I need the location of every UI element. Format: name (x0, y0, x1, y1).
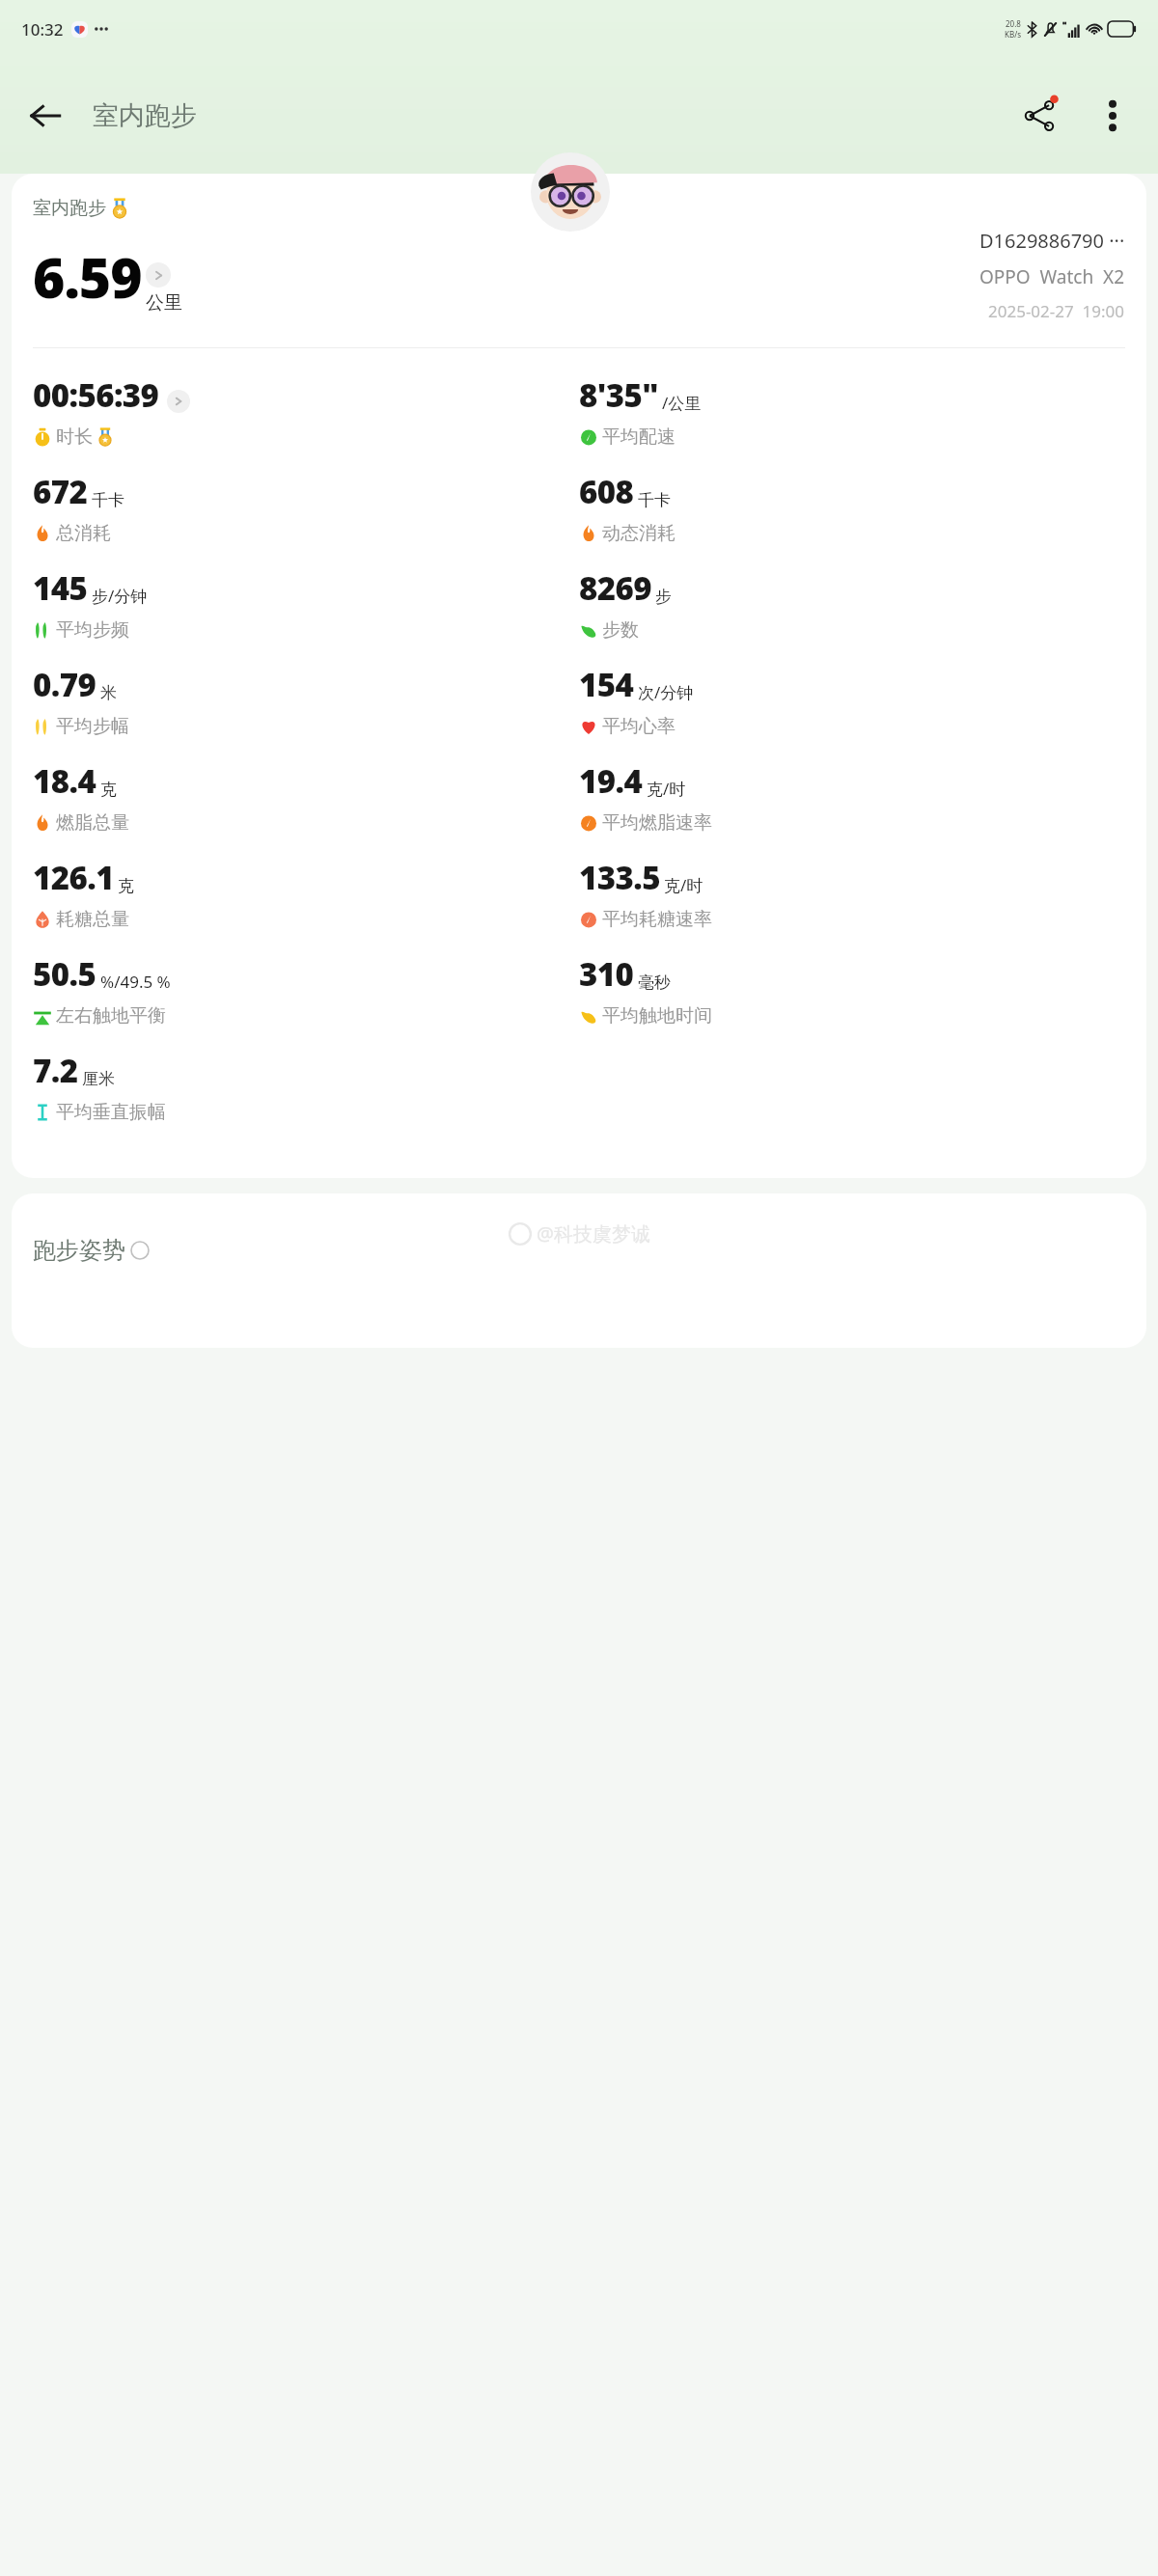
staticText: 2025-02-27 19:00 (988, 300, 1125, 322)
staticText: 145 (33, 566, 88, 610)
staticText: 公里 (146, 291, 182, 315)
button[interactable]: Distance detail (146, 262, 171, 288)
staticText: 平均步频 (56, 618, 129, 642)
staticText: 毫秒 (638, 973, 671, 993)
staticText: /公里 (662, 392, 702, 414)
staticText: 8'35" (579, 373, 658, 417)
button[interactable]: 8'35" (579, 373, 1125, 449)
button[interactable]: 310 (579, 952, 1125, 1028)
staticText: 平均触地时间 (602, 1004, 712, 1028)
button[interactable]: 50.5 (33, 952, 579, 1028)
staticText: 厘米 (82, 1069, 115, 1089)
staticText: 耗糖总量 (56, 908, 129, 931)
button[interactable]: Back (14, 84, 77, 148)
button[interactable]: 133.5 (579, 856, 1125, 931)
staticText: %/49.5 % (100, 971, 171, 993)
staticText: 126.1 (33, 856, 114, 899)
button[interactable]: 跑步姿势 (12, 1193, 1146, 1348)
staticText: D1629886790 ··· (979, 228, 1125, 254)
button[interactable]: 145 (33, 566, 579, 642)
staticText: 克/时 (664, 874, 703, 896)
button[interactable]: 126.1 (33, 856, 579, 931)
staticText: @科技虞梦诚 (537, 1220, 650, 1247)
staticText: 平均燃脂速率 (602, 811, 712, 835)
staticText: 50.5 (33, 952, 96, 996)
staticText: 千卡 (92, 490, 124, 510)
button[interactable]: 7.2 (33, 1049, 579, 1124)
staticText: 18.4 (33, 759, 96, 803)
staticText: 608 (579, 470, 634, 513)
staticText: 20.8 (1006, 18, 1021, 29)
staticText: 动态消耗 (602, 522, 675, 545)
button[interactable]: 18.4 (33, 759, 579, 835)
staticText: 总消耗 (56, 522, 111, 545)
staticText: 平均步幅 (56, 715, 129, 738)
staticText: 平均配速 (602, 425, 675, 449)
staticText: 时长 (56, 425, 93, 449)
staticText: 室内跑步 (33, 197, 106, 220)
staticText: OPPO Watch X2 (979, 264, 1125, 289)
button[interactable]: More options (1081, 84, 1144, 148)
staticText: 00:56:39 (33, 373, 159, 417)
staticText: 10:32 (21, 18, 64, 41)
staticText: 133.5 (579, 856, 660, 899)
staticText: 0.79 (33, 663, 96, 706)
button[interactable]: 8269 (579, 566, 1125, 642)
staticText: 米 (100, 683, 117, 703)
staticText: 7.2 (33, 1049, 78, 1092)
staticText: 克 (100, 780, 117, 800)
button[interactable]: 0.79 (33, 663, 579, 738)
button[interactable]: 19.4 (579, 759, 1125, 835)
staticText: 平均垂直振幅 (56, 1101, 166, 1124)
button[interactable]: 672 (33, 470, 579, 545)
staticText: 克 (118, 876, 134, 896)
staticText: 平均耗糖速率 (602, 908, 712, 931)
staticText: 平均心率 (602, 715, 675, 738)
staticText: 672 (33, 470, 88, 513)
staticText: 310 (579, 952, 634, 996)
button[interactable]: 608 (579, 470, 1125, 545)
staticText: 左右触地平衡 (56, 1004, 166, 1028)
staticText: 19.4 (579, 759, 643, 803)
staticText: 154 (579, 663, 634, 706)
staticText: 8269 (579, 566, 651, 610)
staticText: 燃脂总量 (56, 811, 129, 835)
staticText: 千卡 (638, 490, 671, 510)
staticText: 步/分钟 (92, 585, 148, 607)
button[interactable]: 00:56:39 (33, 373, 579, 449)
staticText: 跑步姿势 (33, 1236, 125, 1265)
staticText: 6.59 (33, 239, 142, 315)
staticText: 室内跑步 (93, 99, 197, 132)
staticText: 克/时 (647, 778, 686, 800)
button[interactable]: Share (1007, 84, 1071, 148)
staticText: KB/s (1005, 29, 1021, 40)
staticText: 次/分钟 (638, 681, 694, 703)
staticText: 步数 (602, 618, 639, 642)
button[interactable]: 154 (579, 663, 1125, 738)
button[interactable]: Profile (531, 152, 610, 232)
staticText: 步 (655, 587, 672, 607)
